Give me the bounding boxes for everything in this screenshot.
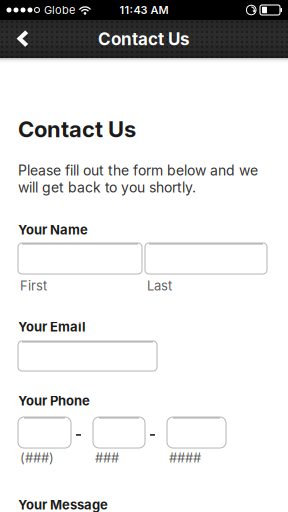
staticText: (###): [20, 450, 54, 466]
staticText: Contact Us: [18, 116, 136, 143]
staticText: Please fill out the form below and we wi…: [18, 162, 258, 196]
staticText: Your Name: [18, 222, 88, 238]
staticText: Your Phone: [18, 393, 90, 409]
button[interactable]: Text field: [145, 243, 267, 274]
button[interactable]: Text field: [18, 417, 71, 448]
staticText: Your Message: [18, 497, 108, 512]
staticText: First: [20, 278, 47, 294]
staticText: ###: [95, 450, 119, 466]
staticText: 11:43 AM: [119, 3, 168, 17]
staticText: ####: [169, 450, 201, 466]
staticText: Globe: [44, 3, 75, 17]
button[interactable]: Text field: [18, 243, 142, 274]
button[interactable]: Text field: [93, 417, 145, 448]
button[interactable]: Text field: [167, 417, 226, 448]
staticText: Your Email: [18, 319, 86, 335]
button[interactable]: Back: [0, 20, 50, 58]
staticText: Last: [147, 278, 172, 294]
button[interactable]: Text field: [18, 341, 157, 371]
staticText: Contact Us: [98, 29, 190, 49]
